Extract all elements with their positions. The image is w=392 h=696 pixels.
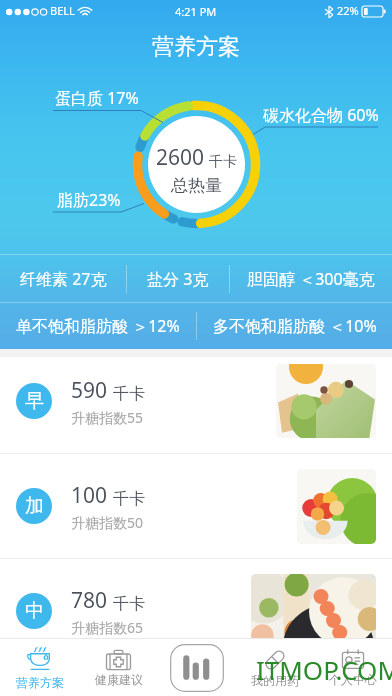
staticText: 升糖指数55 [71, 408, 144, 427]
staticText: 100 [71, 481, 108, 510]
button[interactable]: 早 [0, 357, 392, 453]
staticText: 脂肪23% [57, 189, 121, 211]
staticText: 总热量 [171, 175, 222, 196]
button[interactable]: 健康建议 [79, 639, 158, 696]
button[interactable]: 个人中心 [314, 639, 392, 696]
staticText: 千卡 [113, 384, 145, 404]
staticText: 千卡 [113, 594, 145, 614]
staticText: 早 [25, 389, 44, 413]
staticText: 2600 [156, 143, 205, 172]
staticText: 590 [71, 376, 108, 405]
staticText: ITMOP.COM [256, 652, 392, 687]
staticText: 加 [25, 494, 44, 518]
staticText: 蛋白质 17% [55, 87, 139, 109]
button[interactable]: 加 [0, 454, 392, 558]
staticText: BELL [50, 3, 75, 18]
staticText: 健康建议 [95, 672, 143, 687]
button[interactable]: 营养方案 [0, 639, 79, 696]
staticText: 中 [25, 599, 44, 623]
staticText: 多不饱和脂肪酸 ＜10% [213, 315, 377, 337]
button[interactable]: 中 [0, 559, 392, 663]
button[interactable]: 我的用药 [236, 639, 314, 696]
staticText: 个人中心 [329, 672, 377, 687]
staticText: 胆固醇 ＜300毫克 [247, 268, 375, 290]
staticText: 千卡 [113, 489, 145, 509]
staticText: 4:21 PM [175, 4, 217, 19]
staticText: 纤维素 27克 [20, 268, 107, 290]
staticText: 我的用药 [251, 673, 299, 688]
staticText: 升糖指数65 [71, 618, 144, 637]
staticText: 22% [337, 3, 359, 18]
staticText: 营养方案 [16, 675, 64, 690]
staticText: 营养方案 [152, 33, 240, 61]
staticText: 盐分 3克 [147, 268, 209, 290]
staticText: 升糖指数50 [71, 513, 144, 532]
staticText: 碳水化合物 60% [263, 104, 379, 126]
staticText: 千卡 [209, 153, 237, 171]
button[interactable]: 统计 [158, 639, 236, 696]
staticText: 单不饱和脂肪酸 ＞12% [16, 315, 180, 337]
staticText: 780 [71, 586, 108, 615]
